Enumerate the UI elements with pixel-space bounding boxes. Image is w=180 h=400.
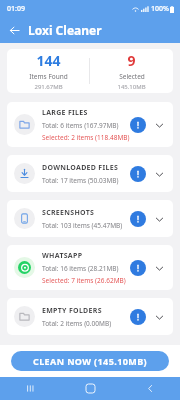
button[interactable]: Info <box>130 309 146 325</box>
staticText: WHATSAPP <box>42 251 83 261</box>
staticText: Selected: 7 items (26.62MB) <box>42 276 126 285</box>
staticText: Total: 16 items (28.21MB) <box>42 264 119 273</box>
button[interactable]: Info <box>130 166 146 182</box>
staticText: SCREENSHOTS <box>42 208 95 218</box>
staticText: CLEAN NOW (145.10MB) <box>33 355 147 367</box>
staticText: 145.10MB <box>117 83 146 91</box>
button[interactable]: DOWNLOADED FILES <box>7 155 173 192</box>
staticText: Selected <box>119 72 145 81</box>
button[interactable]: Expand <box>152 118 166 132</box>
button[interactable]: Expand <box>152 212 166 226</box>
button[interactable]: Recents <box>15 377 45 400</box>
staticText: Total: 6 items (167.97MB) <box>42 121 119 130</box>
staticText: 100% <box>151 4 169 14</box>
staticText: Items Found <box>29 72 68 81</box>
button[interactable]: Back <box>5 21 23 39</box>
staticText: Total: 17 items (50.03MB) <box>42 176 119 185</box>
button[interactable]: CLEAN NOW (145.10MB) <box>11 351 169 371</box>
staticText: DOWNLOADED FILES <box>42 163 119 173</box>
staticText: Selected: 2 items (118.48MB) <box>42 133 130 142</box>
staticText: 9 <box>127 51 136 70</box>
staticText: 01:09 <box>7 4 25 14</box>
staticText: 291.67MB <box>34 83 63 91</box>
staticText: Loxi Cleaner <box>28 22 102 38</box>
button[interactable]: Expand <box>152 310 166 324</box>
button[interactable]: SCREENSHOTS <box>7 200 173 237</box>
staticText: 144 <box>36 51 61 70</box>
button[interactable]: EMPTY FOLDERS <box>7 298 173 335</box>
button[interactable]: Expand <box>152 167 166 181</box>
staticText: EMPTY FOLDERS <box>42 306 102 316</box>
button[interactable]: Back <box>135 377 165 400</box>
button[interactable]: Home <box>75 377 105 400</box>
button[interactable]: Info <box>130 211 146 227</box>
button[interactable]: Expand <box>152 261 166 275</box>
staticText: LARGE FILES <box>42 108 88 118</box>
staticText: Total: 2 items (0.00MB) <box>42 319 112 328</box>
button[interactable]: Info <box>130 260 146 276</box>
button[interactable]: LARGE FILES <box>7 102 173 147</box>
staticText: Total: 103 items (45.47MB) <box>42 221 123 230</box>
button[interactable]: WHATSAPP <box>7 245 173 290</box>
button[interactable]: Info <box>130 117 146 133</box>
